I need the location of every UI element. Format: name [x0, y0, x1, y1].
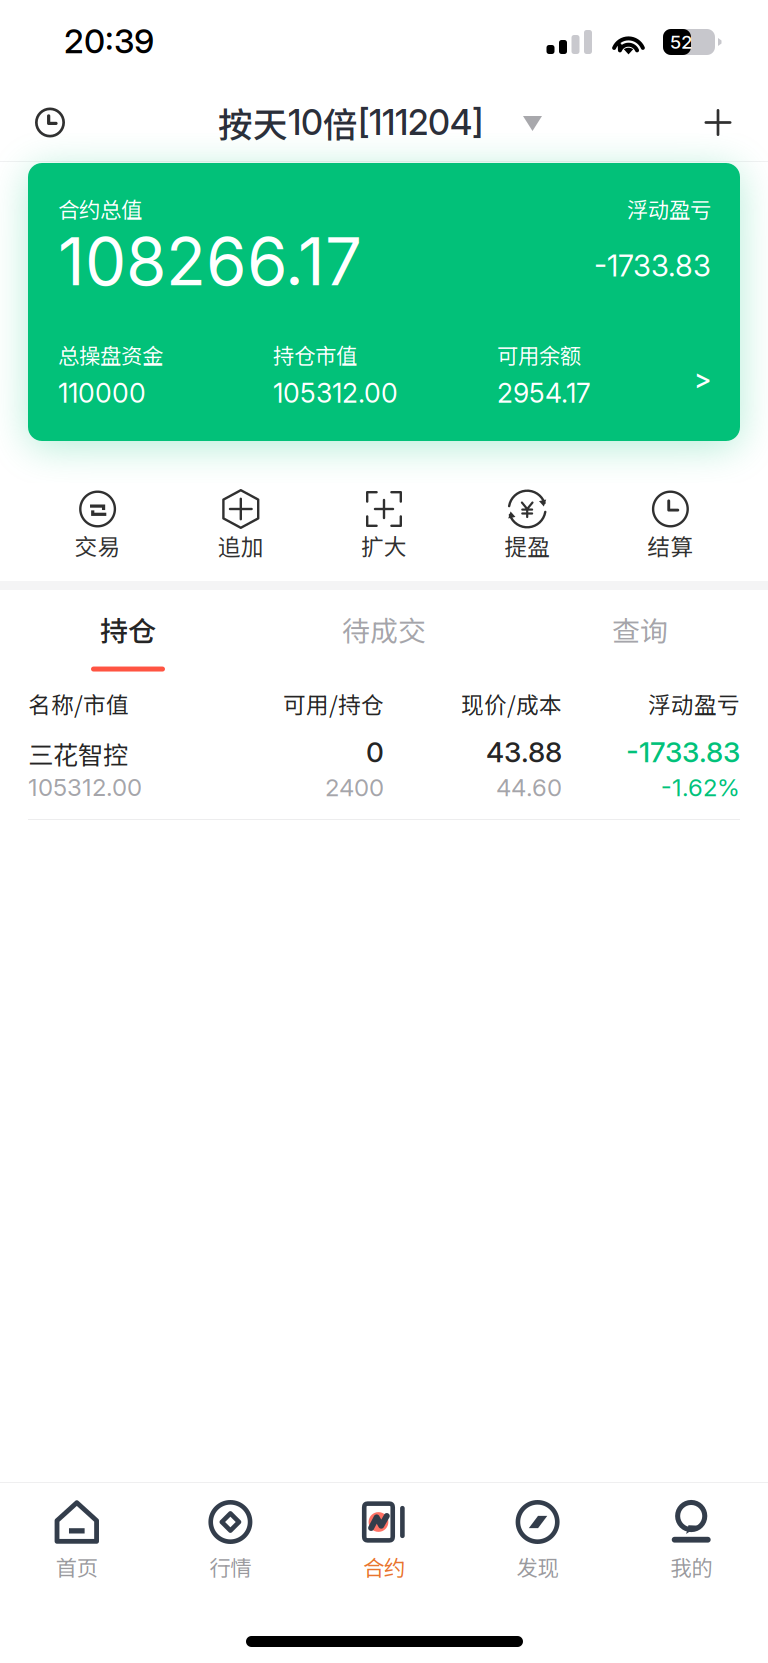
staticText: 0: [366, 735, 384, 769]
staticText: 可用余额: [497, 339, 581, 370]
staticText: 结算: [647, 529, 693, 562]
staticText: 名称/市值: [28, 687, 129, 720]
staticText: 10: [288, 101, 323, 143]
staticText: [111204]: [358, 101, 483, 143]
button[interactable]: 合约: [307, 1498, 461, 1608]
button[interactable]: 行情: [154, 1498, 307, 1608]
staticText: 合约总值: [58, 193, 142, 224]
staticText: 浮动盈亏: [648, 687, 740, 720]
staticText: 三花智控: [28, 735, 128, 772]
button[interactable]: 提盈: [456, 470, 599, 581]
staticText: 提盈: [504, 529, 550, 562]
button[interactable]: 持仓: [0, 590, 256, 682]
staticText: 行情: [209, 1551, 251, 1582]
staticText: >: [694, 363, 712, 395]
staticText: 浮动盈亏: [627, 193, 711, 224]
staticText: 总操盘资金: [58, 339, 163, 370]
button[interactable]: 我的: [614, 1498, 768, 1608]
staticText: 110000: [58, 377, 146, 409]
button[interactable]: 首页: [0, 1498, 154, 1608]
button[interactable]: 发现: [461, 1498, 614, 1608]
staticText: 我的: [670, 1551, 712, 1582]
staticText: 105312.00: [28, 773, 142, 802]
staticText: 扩大: [361, 529, 407, 562]
staticText: -1733.83: [594, 248, 711, 283]
staticText: 首页: [56, 1551, 98, 1582]
staticText: 按天: [218, 97, 288, 148]
staticText: 持仓市值: [273, 339, 357, 370]
button[interactable]: 追加: [169, 470, 312, 581]
button[interactable]: 结算: [599, 470, 742, 581]
button[interactable]: Add: [670, 84, 766, 161]
staticText: 2400: [325, 773, 384, 802]
button[interactable]: 查询: [512, 590, 768, 682]
staticText: 待成交: [342, 609, 426, 649]
staticText: 105312.00: [273, 377, 398, 409]
staticText: 合约: [363, 1551, 405, 1582]
staticText: 可用/持仓: [283, 687, 384, 720]
staticText: 追加: [218, 529, 264, 562]
staticText: 44.60: [496, 773, 562, 802]
staticText: -1.62%: [661, 773, 740, 802]
staticText: 交易: [75, 529, 121, 562]
staticText: 现价/成本: [461, 687, 562, 720]
button[interactable]: History: [2, 84, 98, 161]
button[interactable]: 三花智控: [28, 735, 740, 807]
staticText: 倍: [323, 97, 358, 148]
staticText: 20:39: [64, 21, 154, 61]
staticText: 发现: [517, 1551, 559, 1582]
button[interactable]: 扩大: [312, 470, 456, 581]
button[interactable]: 交易: [26, 470, 169, 581]
staticText: 108266.17: [58, 222, 362, 301]
staticText: -1733.83: [626, 735, 740, 769]
button[interactable]: 合约总值: [28, 163, 740, 441]
staticText: 52: [670, 31, 693, 53]
staticText: 43.88: [486, 735, 562, 769]
staticText: 持仓: [100, 609, 156, 649]
button[interactable]: 待成交: [256, 590, 512, 682]
staticText: 查询: [612, 609, 668, 649]
staticText: 2954.17: [497, 377, 591, 409]
